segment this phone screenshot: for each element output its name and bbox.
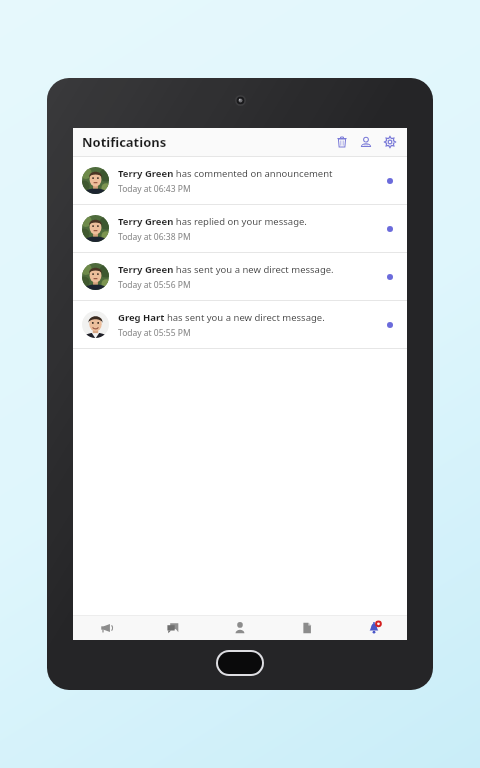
staticText: Terry Green has commented on announcemen… xyxy=(118,167,333,180)
button[interactable]: Notifications xyxy=(340,616,407,640)
staticText: Today at 06:38 PM xyxy=(118,231,191,243)
button[interactable]: Messages xyxy=(139,616,206,640)
staticText: Terry Green has sent you a new direct me… xyxy=(118,263,334,276)
button[interactable]: Terry Green has sent you a new direct me… xyxy=(73,253,407,300)
staticText: Today at 05:55 PM xyxy=(118,327,191,339)
button[interactable]: Profile xyxy=(206,616,273,640)
staticText: Today at 06:43 PM xyxy=(118,183,191,195)
button[interactable]: Terry Green has commented on announcemen… xyxy=(73,157,407,204)
button[interactable]: Announcements xyxy=(73,616,139,640)
button[interactable]: Home xyxy=(218,652,262,674)
button[interactable]: Settings xyxy=(381,133,399,151)
staticText: Today at 05:56 PM xyxy=(118,279,191,291)
button[interactable]: Delete xyxy=(333,133,351,151)
button[interactable]: Terry Green has replied on your message. xyxy=(73,205,407,252)
staticText: Terry Green has replied on your message. xyxy=(118,215,307,228)
staticText: Greg Hart has sent you a new direct mess… xyxy=(118,311,325,324)
button[interactable]: Documents xyxy=(273,616,340,640)
button[interactable]: Greg Hart has sent you a new direct mess… xyxy=(73,301,407,348)
button[interactable]: Mark all read xyxy=(357,133,375,151)
staticText: Notifications xyxy=(82,133,167,151)
